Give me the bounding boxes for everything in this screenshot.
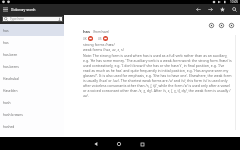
- button[interactable]: Bookmark: [216, 4, 228, 15]
- staticText: Hasdrubal: [3, 76, 20, 80]
- button[interactable]: Back: [90, 138, 102, 150]
- button[interactable]: Search: [228, 4, 240, 15]
- staticText: has-beens: [3, 64, 19, 68]
- button[interactable]: has: [0, 24, 64, 36]
- button[interactable]: Text size: [216, 20, 226, 30]
- button[interactable]: Forward: [204, 4, 216, 15]
- button[interactable]: has: [0, 36, 64, 48]
- staticText: hash: [3, 100, 11, 104]
- button[interactable]: has-been: [0, 48, 64, 60]
- button[interactable]: Back: [192, 4, 204, 15]
- staticText: hashed: [3, 124, 15, 128]
- button[interactable]: Menu: [0, 4, 11, 15]
- staticText: strong forms /hæz/ weak forms /həz, əz, …: [83, 42, 124, 52]
- staticText: (from have): [93, 30, 110, 34]
- button[interactable]: hash browns: [0, 108, 64, 120]
- staticText: UK: [83, 37, 87, 41]
- button[interactable]: Settings: [206, 20, 216, 30]
- button[interactable]: Play pronunciation: [103, 36, 108, 41]
- staticText: has-been: [3, 52, 18, 56]
- button[interactable]: Play pronunciation: [88, 36, 93, 41]
- button[interactable]: has-beens: [0, 60, 64, 72]
- staticText: hash browns: [3, 112, 23, 116]
- staticText: has: [83, 29, 91, 34]
- button[interactable]: Type here: [2, 16, 63, 22]
- staticText: Note: The strong form is used when has i…: [83, 53, 232, 98]
- staticText: Type here: [10, 17, 24, 21]
- staticText: Dictionary search: [11, 8, 36, 12]
- button[interactable]: Home: [113, 138, 125, 150]
- staticText: US: [98, 37, 102, 41]
- button[interactable]: hash: [0, 96, 64, 108]
- button[interactable]: Haselden: [0, 84, 64, 96]
- staticText: 10:05: [230, 0, 239, 4]
- button[interactable]: Share: [226, 20, 236, 30]
- staticText: has: [3, 40, 9, 44]
- button[interactable]: Hasdrubal: [0, 72, 64, 84]
- button[interactable]: hashed: [0, 120, 64, 132]
- staticText: Haselden: [3, 88, 18, 92]
- staticText: has: [3, 28, 9, 32]
- button[interactable]: Recent apps: [136, 138, 148, 150]
